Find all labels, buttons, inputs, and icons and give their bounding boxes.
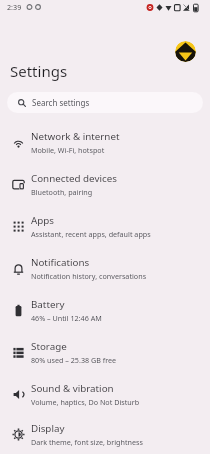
- staticText: Settings: [10, 61, 68, 81]
- staticText: Connected devices: [31, 172, 117, 185]
- button[interactable]: Apps: [0, 205, 210, 247]
- staticText: Assistant, recent apps, default apps: [31, 229, 151, 239]
- staticText: Notifications: [31, 256, 90, 269]
- staticText: Storage: [31, 340, 67, 353]
- button[interactable]: Storage: [0, 331, 210, 373]
- staticText: Bluetooth, pairing: [31, 187, 93, 197]
- staticText: Volume, haptics, Do Not Disturb: [31, 397, 140, 407]
- button[interactable]: [175, 41, 196, 62]
- staticText: Battery: [31, 298, 65, 311]
- button[interactable]: Sound & vibration: [0, 373, 210, 415]
- button[interactable]: Network & internet: [0, 121, 210, 163]
- staticText: 2:39: [7, 2, 22, 12]
- button[interactable]: Display: [0, 415, 210, 454]
- staticText: Dark theme, font size, brightness: [31, 437, 143, 447]
- staticText: 80% used – 25.38 GB free: [31, 355, 117, 365]
- staticText: Search settings: [32, 97, 90, 108]
- staticText: Sound & vibration: [31, 382, 114, 395]
- staticText: Apps: [31, 214, 55, 227]
- staticText: 46% – Until 12:46 AM: [31, 313, 102, 323]
- button[interactable]: Connected devices: [0, 163, 210, 205]
- button[interactable]: Search settings: [7, 92, 203, 113]
- button[interactable]: Notifications: [0, 247, 210, 289]
- staticText: Network & internet: [31, 130, 120, 143]
- staticText: Mobile, Wi‑Fi, hotspot: [31, 145, 105, 155]
- staticText: Notification history, conversations: [31, 271, 147, 281]
- staticText: Display: [31, 422, 65, 435]
- button[interactable]: Battery: [0, 289, 210, 331]
